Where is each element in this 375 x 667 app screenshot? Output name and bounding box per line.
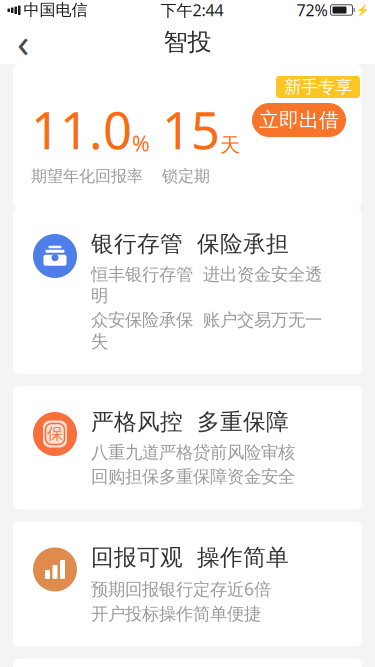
staticText: 智投 bbox=[163, 27, 211, 57]
staticText: 中国电信 bbox=[23, 0, 87, 20]
button[interactable]: 保 bbox=[13, 386, 362, 509]
staticText: 严格风控 多重保障 bbox=[91, 408, 289, 436]
staticText: 银行存管 保险承担 bbox=[91, 230, 289, 258]
staticText: 锁定期 bbox=[162, 166, 210, 186]
staticText: 开户投标操作简单便捷 bbox=[91, 603, 261, 625]
staticText: 15 bbox=[162, 96, 220, 163]
staticText: ⚡ bbox=[356, 4, 369, 16]
button[interactable]: Back bbox=[0, 20, 46, 64]
staticText: 天 bbox=[220, 133, 240, 157]
staticText: ‹ bbox=[17, 15, 29, 68]
staticText: 恒丰银行存管 进出资金安全透明 bbox=[91, 264, 322, 306]
staticText: 下午2:44 bbox=[160, 0, 223, 21]
staticText: 新手专享 bbox=[284, 76, 352, 98]
staticText: % bbox=[132, 129, 150, 157]
staticText: 立即出借 bbox=[259, 108, 339, 132]
staticText: 回购担保多重保障资金安全 bbox=[91, 466, 295, 487]
button[interactable]: 回报可观 操作简单 bbox=[13, 521, 362, 646]
staticText: 众安保险承保 账户交易万无一失 bbox=[91, 309, 322, 352]
staticText: 期望年化回报率 bbox=[31, 166, 143, 186]
staticText: 保 bbox=[47, 424, 63, 444]
button[interactable]: 银行存管 保险承担 bbox=[13, 208, 362, 374]
staticText: 八重九道严格贷前风险审核 bbox=[91, 442, 295, 463]
staticText: 预期回报银行定存近6倍 bbox=[91, 577, 271, 600]
button[interactable]: 立即出借 bbox=[252, 103, 346, 137]
staticText: 11.0 bbox=[31, 96, 132, 163]
staticText: 回报可观 操作简单 bbox=[91, 543, 289, 571]
staticText: 72% bbox=[296, 0, 327, 21]
